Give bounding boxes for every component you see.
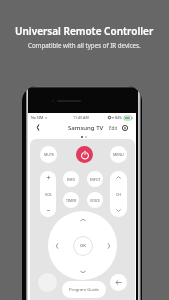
- button[interactable]: Volume: [40, 171, 56, 217]
- staticText: No SIM: [31, 115, 44, 120]
- staticText: Universal Remote Controller: [15, 24, 154, 38]
- button[interactable]: Up: [78, 215, 87, 224]
- staticText: CH: [116, 192, 121, 197]
- button[interactable]: Program Guide: [62, 281, 106, 298]
- staticText: Edit: [109, 125, 118, 131]
- staticText: OK: [80, 243, 86, 249]
- button[interactable]: Back: [33, 123, 42, 132]
- staticText: TIMER: [66, 198, 77, 203]
- button[interactable]: Keypad: [38, 273, 57, 292]
- staticText: Compatible with all types of IR devices.: [28, 41, 141, 49]
- button[interactable]: MENU: [110, 146, 127, 163]
- button[interactable]: Edit: [108, 123, 119, 133]
- staticText: MENU: [113, 152, 124, 157]
- staticText: Program Guide: [69, 287, 99, 293]
- staticText: INFO: [67, 177, 76, 182]
- button[interactable]: MUTE: [40, 146, 57, 163]
- button[interactable]: INFO: [63, 171, 79, 187]
- staticText: VOL: [45, 192, 52, 197]
- staticText: 84%: [115, 115, 123, 120]
- staticText: 11:40 AM: [73, 115, 89, 120]
- button[interactable]: Power: [76, 146, 93, 163]
- staticText: Samsung TV: [68, 124, 104, 132]
- button[interactable]: TIMER: [63, 192, 79, 208]
- button[interactable]: INPUT: [87, 171, 103, 187]
- button[interactable]: Channel: [110, 171, 127, 217]
- button[interactable]: Info: [122, 125, 128, 131]
- button[interactable]: Down: [78, 267, 87, 276]
- staticText: INPUT: [90, 177, 101, 182]
- staticText: MUTE: [44, 152, 54, 157]
- staticText: VOICE: [90, 198, 100, 203]
- button[interactable]: Right: [104, 241, 113, 250]
- button[interactable]: OK: [73, 236, 93, 256]
- button[interactable]: Left: [52, 241, 61, 250]
- button[interactable]: Back: [110, 274, 127, 291]
- button[interactable]: VOICE: [87, 192, 103, 208]
